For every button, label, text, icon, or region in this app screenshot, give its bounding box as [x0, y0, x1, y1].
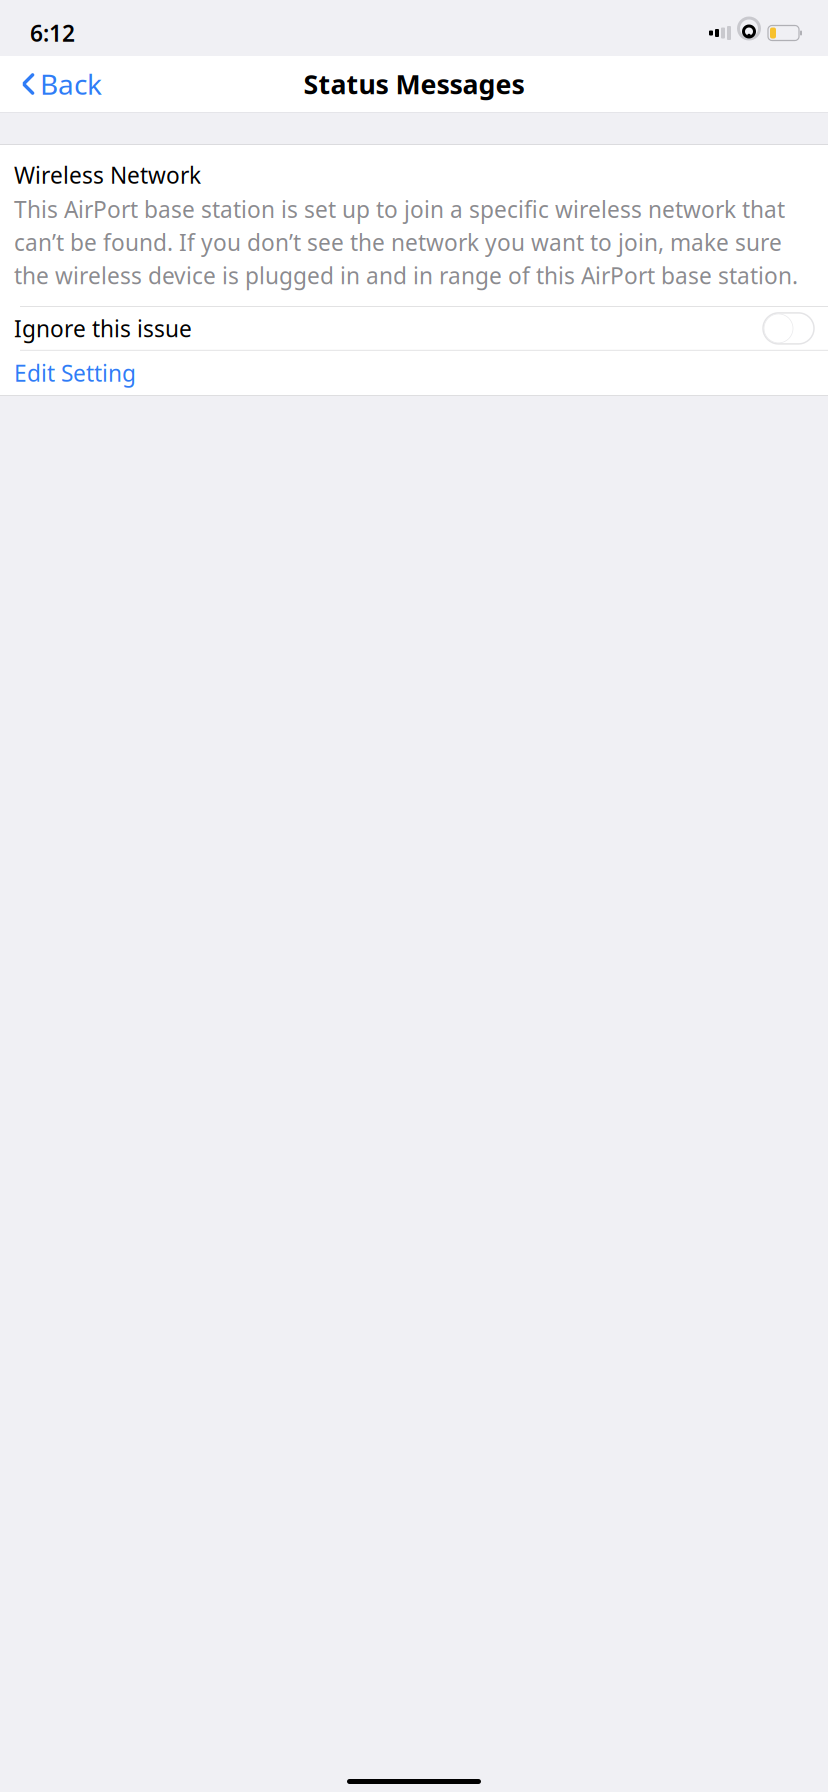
staticText: Edit Setting: [14, 358, 136, 388]
staticText: Status Messages: [303, 66, 524, 102]
staticText: This AirPort base station is set up to j…: [14, 194, 798, 290]
button[interactable]: Edit Setting: [0, 350, 828, 395]
button[interactable]: Ignore this issue: [0, 307, 828, 350]
staticText: Back: [40, 65, 102, 103]
staticText: Wireless Network: [14, 160, 201, 190]
button[interactable]: Back: [10, 57, 112, 111]
staticText: 6:12: [30, 18, 75, 48]
staticText: Ignore this issue: [14, 313, 192, 343]
